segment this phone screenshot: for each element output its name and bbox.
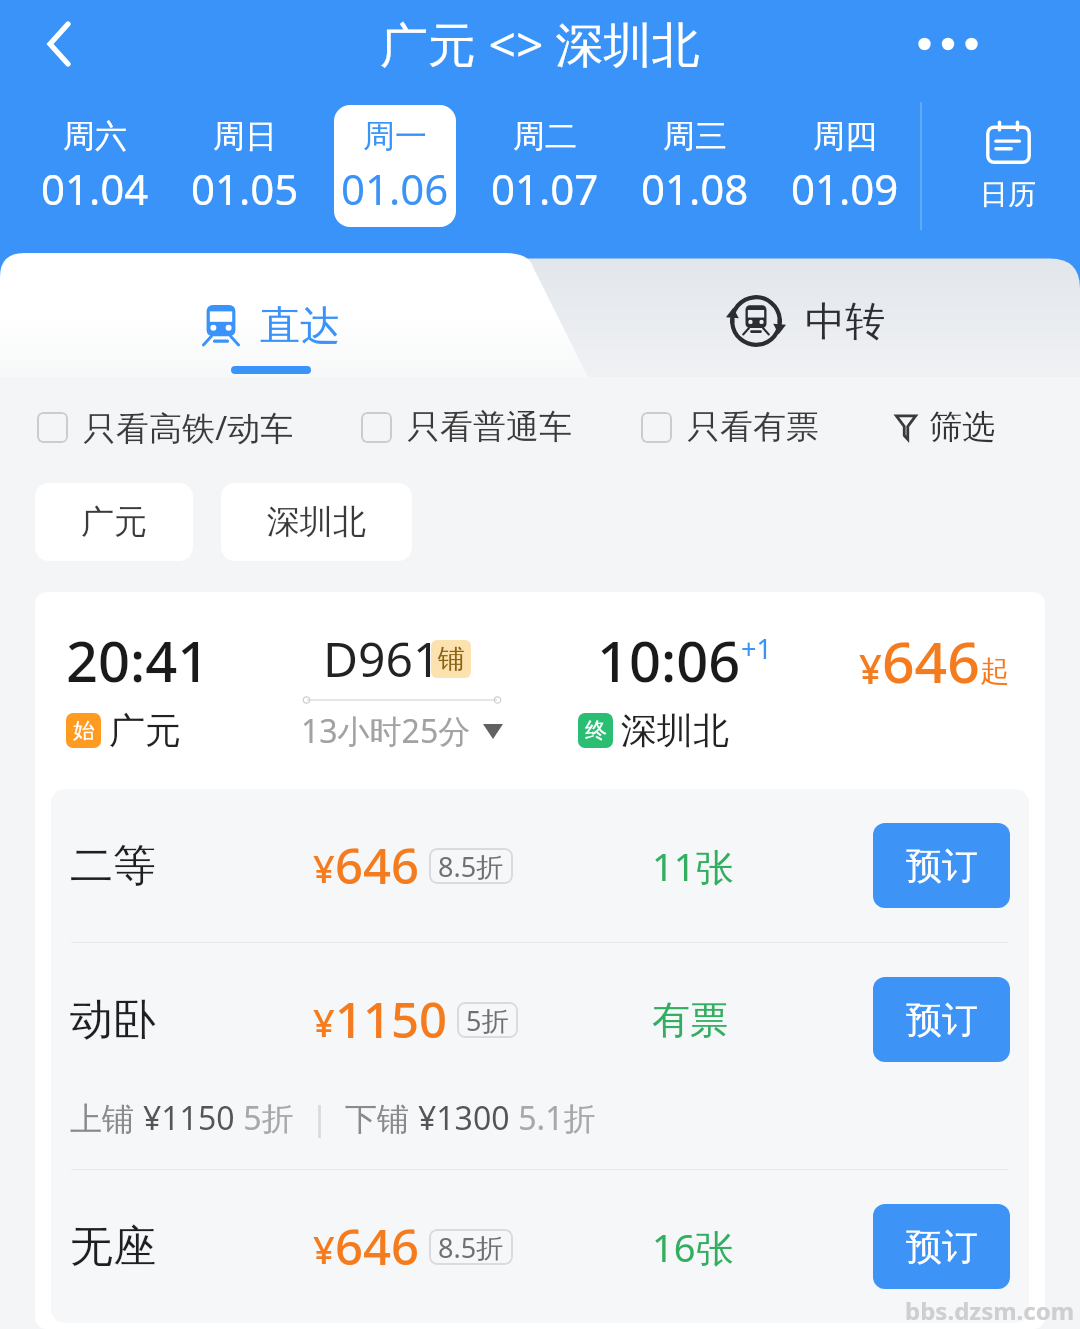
staticText: 广元 [81, 501, 147, 543]
staticText: 01.09 [791, 160, 899, 217]
staticText: 直达 [260, 300, 340, 350]
button[interactable]: 动卧 [51, 943, 1029, 1169]
staticText: ¥ [313, 996, 335, 1048]
staticText: 预订 [906, 997, 978, 1042]
staticText: 01.05 [191, 160, 299, 217]
staticText: 周四 [813, 116, 877, 156]
staticText: +1 [741, 630, 772, 667]
staticText: 周二 [513, 116, 577, 156]
staticText: 周六 [63, 116, 127, 156]
staticText: 起 [980, 653, 1009, 690]
button[interactable]: 周四 [784, 105, 906, 227]
staticText: 5折 [466, 1002, 509, 1038]
staticText: 646 [882, 622, 980, 700]
button[interactable]: 预订 [873, 1204, 1010, 1289]
staticText: ¥ [313, 1223, 335, 1275]
staticText: ¥ [313, 842, 335, 894]
staticText: 只看普通车 [407, 406, 572, 448]
staticText: 只看有票 [687, 406, 819, 448]
staticText: ¥1300 [418, 1096, 510, 1140]
staticText: 8.5折 [438, 1229, 504, 1265]
button[interactable]: 周日 [184, 105, 306, 227]
staticText: 二等 [70, 839, 156, 893]
button[interactable]: 周六 [34, 105, 156, 227]
button[interactable]: Calendar [936, 96, 1080, 236]
staticText: 周一 [363, 116, 427, 156]
staticText: 预订 [906, 1224, 978, 1269]
button[interactable]: 广元 [35, 483, 193, 561]
staticText: 下铺 [345, 1096, 418, 1140]
staticText: ¥1150 [143, 1096, 235, 1140]
staticText: 中转 [805, 296, 885, 346]
button[interactable]: 只看有票 [641, 406, 819, 448]
staticText: 动卧 [70, 993, 156, 1047]
staticText: 上铺 [70, 1096, 143, 1140]
staticText: 13小时25分 [301, 709, 471, 753]
button[interactable]: 预订 [873, 823, 1010, 908]
staticText: 铺 [438, 642, 465, 676]
button[interactable]: More options [908, 4, 988, 84]
staticText: 01.07 [491, 160, 599, 217]
staticText: 预订 [906, 843, 978, 888]
staticText: 只看高铁/动车 [83, 405, 294, 450]
staticText: 01.06 [341, 160, 449, 217]
staticText: 周日 [213, 116, 277, 156]
button[interactable]: Back [20, 4, 100, 84]
staticText: 5.1折 [510, 1096, 596, 1140]
button[interactable]: 中转 [540, 253, 1080, 377]
button[interactable]: Filter [895, 406, 1080, 448]
staticText: bbs.dzsm.com [905, 1294, 1075, 1327]
staticText: 646 [335, 832, 420, 899]
button[interactable]: 周一 [334, 105, 456, 227]
staticText: D961 [323, 626, 441, 691]
staticText: 10:06 [597, 622, 741, 698]
button[interactable]: 只看高铁/动车 [37, 405, 294, 450]
button[interactable]: 深圳北 [221, 483, 412, 561]
staticText: 日历 [980, 177, 1036, 212]
button[interactable]: 周三 [634, 105, 756, 227]
staticText: 20:41 [66, 622, 210, 698]
staticText: 筛选 [929, 406, 995, 448]
button[interactable]: 无座 [51, 1170, 1029, 1323]
staticText: ¥ [859, 641, 882, 695]
staticText: 广元 [109, 708, 181, 753]
staticText: 始 [73, 717, 95, 745]
staticText: 周三 [663, 116, 727, 156]
button[interactable]: 预订 [873, 977, 1010, 1062]
staticText: 深圳北 [621, 708, 729, 753]
staticText: 深圳北 [267, 501, 366, 543]
staticText: 有票 [652, 996, 728, 1044]
staticText: 广元 <> 深圳北 [380, 11, 700, 77]
staticText: 01.08 [641, 160, 749, 217]
staticText: 无座 [70, 1220, 156, 1274]
button[interactable]: 二等 [51, 789, 1029, 942]
staticText: 终 [585, 717, 607, 745]
staticText: 5折 [235, 1096, 294, 1140]
staticText: 16张 [652, 1221, 734, 1273]
staticText: | [294, 1096, 345, 1140]
button[interactable]: 只看普通车 [361, 406, 572, 448]
staticText: 11张 [652, 840, 734, 892]
staticText: 646 [335, 1213, 420, 1280]
staticText: 1150 [335, 986, 448, 1053]
button[interactable]: 周二 [484, 105, 606, 227]
staticText: 01.04 [41, 160, 149, 217]
staticText: 8.5折 [438, 848, 504, 884]
button[interactable]: 20:41 [35, 622, 1045, 789]
button[interactable]: 直达 [0, 253, 540, 377]
